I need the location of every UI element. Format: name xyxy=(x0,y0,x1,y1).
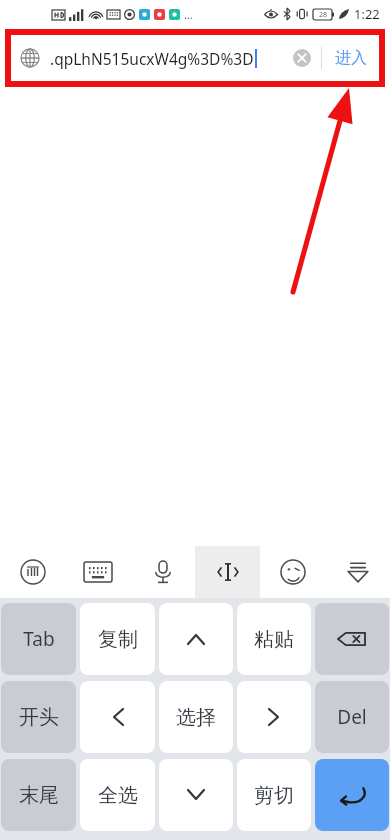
button[interactable]: Clear text xyxy=(289,45,315,71)
button[interactable]: 复制 xyxy=(80,603,155,675)
button[interactable]: 选择 xyxy=(159,681,233,753)
staticText: Tab xyxy=(23,626,55,652)
button[interactable]: 粘贴 xyxy=(237,603,311,675)
button[interactable]: 剪切 xyxy=(237,759,311,831)
button[interactable]: Enter xyxy=(315,759,389,831)
button[interactable]: Del xyxy=(315,681,389,753)
button[interactable]: Site info xyxy=(18,46,42,70)
button[interactable]: Emoji xyxy=(260,546,325,598)
staticText: 选择 xyxy=(176,705,216,730)
button[interactable]: Keyboard layout xyxy=(65,546,130,598)
button[interactable]: Voice input xyxy=(130,546,195,598)
staticText: 粘贴 xyxy=(254,627,294,652)
button[interactable]: Tab xyxy=(1,603,76,675)
button[interactable]: 全选 xyxy=(80,759,155,831)
button[interactable]: Move down xyxy=(159,759,233,831)
staticText: 全选 xyxy=(98,783,138,808)
button[interactable]: Move left xyxy=(80,681,155,753)
staticText: .qpLhN515ucxW4g%3D%3D xyxy=(50,48,254,69)
button[interactable]: Backspace xyxy=(315,603,389,675)
staticText: 开头 xyxy=(19,705,59,730)
button[interactable]: Input method xyxy=(0,546,65,598)
button[interactable]: 末尾 xyxy=(1,759,76,831)
staticText: 末尾 xyxy=(19,783,59,808)
button[interactable]: 进入 xyxy=(322,34,380,82)
button[interactable]: Hide keyboard xyxy=(325,546,390,598)
button[interactable]: Site info xyxy=(10,34,380,82)
button[interactable]: Move up xyxy=(159,603,233,675)
staticText: 剪切 xyxy=(254,783,294,808)
button[interactable]: Edit cursor xyxy=(195,546,260,598)
staticText: 28 xyxy=(319,10,328,20)
button[interactable]: Move right xyxy=(237,681,311,753)
staticText: 1:22 xyxy=(354,5,380,23)
staticText: 进入 xyxy=(335,48,367,68)
staticText: … xyxy=(184,7,193,22)
button[interactable]: 开头 xyxy=(1,681,76,753)
staticText: Del xyxy=(337,704,367,730)
staticText: 复制 xyxy=(98,627,138,652)
